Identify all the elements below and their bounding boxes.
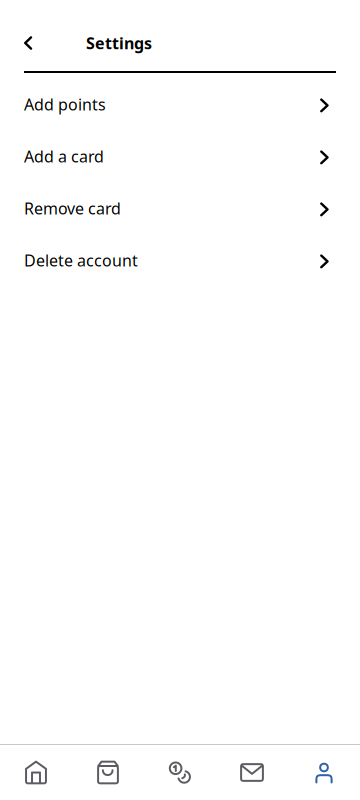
- staticText: Settings: [86, 32, 152, 54]
- button[interactable]: Back: [18, 29, 38, 56]
- staticText: Remove card: [24, 198, 121, 219]
- button[interactable]: Delete account: [0, 234, 360, 286]
- button[interactable]: Mail: [216, 745, 288, 800]
- button[interactable]: Points: [144, 745, 216, 800]
- staticText: Add points: [24, 94, 106, 115]
- staticText: Delete account: [24, 250, 138, 271]
- button[interactable]: Shop: [72, 745, 144, 800]
- button[interactable]: Home: [0, 745, 72, 800]
- button[interactable]: Add a card: [0, 130, 360, 182]
- button[interactable]: Add points: [0, 78, 360, 130]
- button[interactable]: Remove card: [0, 182, 360, 234]
- staticText: Add a card: [24, 146, 104, 167]
- button[interactable]: Profile: [288, 745, 360, 800]
